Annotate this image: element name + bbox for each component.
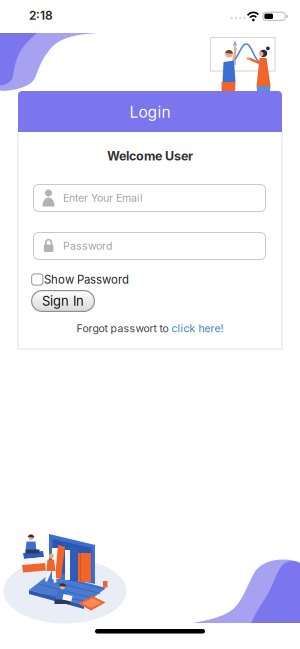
staticText: Enter Your Email bbox=[63, 192, 143, 204]
button[interactable]: Show Password bbox=[31, 273, 134, 286]
staticText: Welcome User bbox=[107, 148, 193, 163]
staticText: Login bbox=[129, 103, 170, 121]
staticText: click here! bbox=[171, 322, 223, 335]
staticText: Show Password bbox=[44, 273, 129, 286]
staticText: Sign In bbox=[42, 293, 84, 309]
staticText: Password bbox=[63, 240, 112, 252]
staticText: 2:18 bbox=[29, 8, 53, 23]
button[interactable]: click here! bbox=[171, 322, 223, 335]
button[interactable]: Sign In bbox=[31, 290, 95, 312]
button[interactable]: Enter Your Email bbox=[33, 184, 266, 212]
button[interactable]: Password bbox=[33, 232, 266, 260]
staticText: Forgot passwort to bbox=[76, 322, 168, 335]
